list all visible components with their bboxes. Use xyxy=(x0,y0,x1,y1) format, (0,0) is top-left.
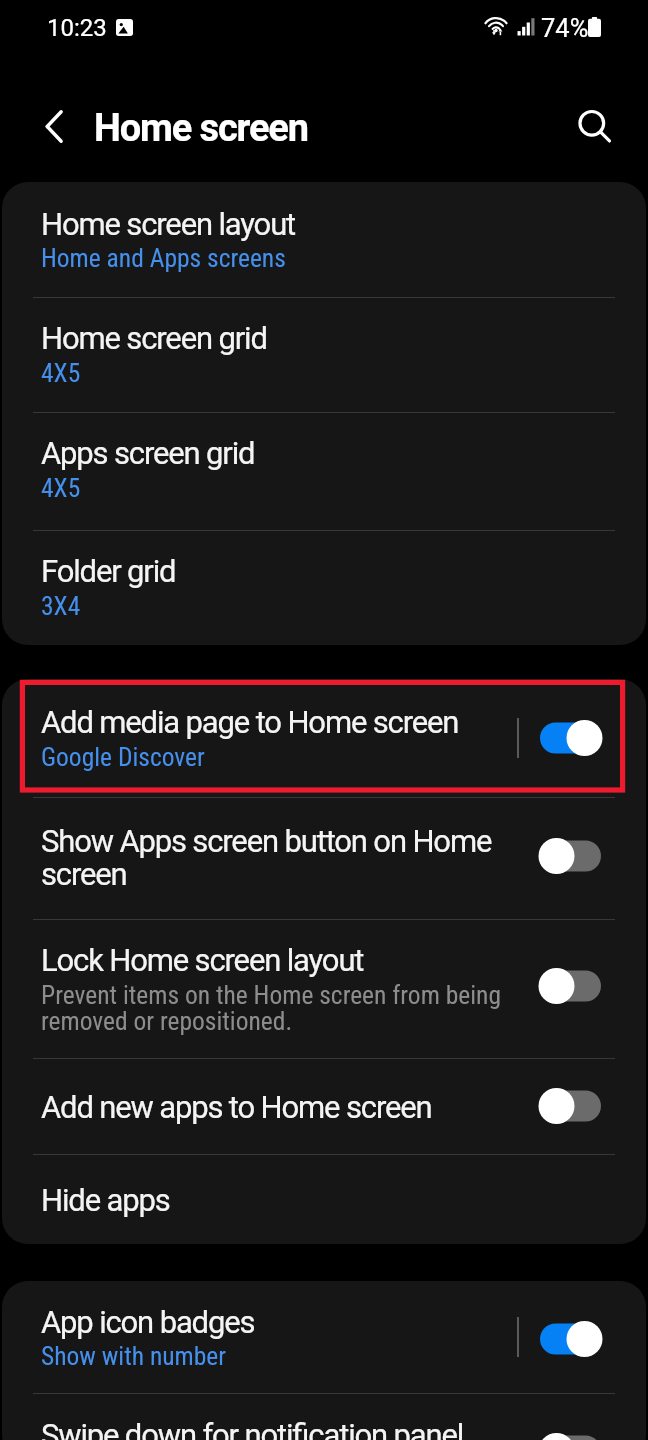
button[interactable] xyxy=(2,412,646,530)
staticText: Google Discover xyxy=(41,742,205,772)
staticText: Show Apps screen button on Home screen xyxy=(41,823,492,893)
staticText: 4X5 xyxy=(41,473,81,503)
staticText: Hide apps xyxy=(41,1182,170,1218)
button[interactable] xyxy=(2,297,646,412)
staticText: 4X5 xyxy=(41,358,81,388)
button[interactable] xyxy=(2,1058,646,1154)
button[interactable]: Switch off xyxy=(540,1086,604,1126)
staticText: Home screen grid xyxy=(41,320,267,356)
staticText: Add new apps to Home screen xyxy=(41,1089,432,1125)
button[interactable] xyxy=(2,1393,646,1440)
staticText: Folder grid xyxy=(41,553,176,589)
staticText: Lock Home screen layout xyxy=(41,942,364,978)
button[interactable] xyxy=(2,679,646,797)
button[interactable] xyxy=(2,797,646,919)
button[interactable]: Switch on xyxy=(540,718,604,758)
staticText: Prevent items on the Home screen from be… xyxy=(41,980,502,1036)
staticText: 3X4 xyxy=(41,591,81,621)
button[interactable]: Search xyxy=(560,95,624,159)
staticText: Swipe down for notification panel xyxy=(41,1417,464,1440)
staticText: Home screen layout xyxy=(41,206,296,242)
button[interactable]: Switch off xyxy=(540,836,604,876)
staticText: Show with number xyxy=(41,1341,227,1371)
staticText: Apps screen grid xyxy=(41,435,255,471)
button[interactable] xyxy=(2,530,646,645)
staticText: 10:23 xyxy=(47,14,107,42)
button[interactable] xyxy=(2,1154,646,1244)
staticText: Home screen xyxy=(94,106,308,151)
button[interactable]: Switch on xyxy=(540,1319,604,1359)
button[interactable]: Navigate up xyxy=(22,95,86,159)
staticText: Home and Apps screens xyxy=(41,243,286,273)
staticText: Add media page to Home screen xyxy=(41,704,459,740)
button[interactable]: Switch off xyxy=(540,1431,604,1440)
button[interactable] xyxy=(2,1281,646,1393)
staticText: App icon badges xyxy=(41,1304,255,1340)
button[interactable] xyxy=(2,182,646,297)
button[interactable]: Switch off xyxy=(540,966,604,1006)
button[interactable] xyxy=(2,919,646,1058)
staticText: 74% xyxy=(541,13,589,43)
